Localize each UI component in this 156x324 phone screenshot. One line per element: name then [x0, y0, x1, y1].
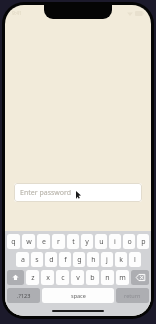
- staticText: y: [85, 237, 89, 247]
- button[interactable]: y: [81, 234, 93, 249]
- staticText: return: [124, 292, 141, 299]
- staticText: j: [106, 255, 108, 265]
- staticText: a: [21, 255, 25, 265]
- button[interactable]: g: [73, 252, 85, 267]
- staticText: i: [114, 237, 116, 247]
- staticText: l: [134, 255, 136, 265]
- button[interactable]: k: [115, 252, 127, 267]
- button[interactable]: v: [71, 270, 84, 285]
- button[interactable]: l: [129, 252, 141, 267]
- button[interactable]: s: [31, 252, 43, 267]
- staticText: v: [76, 273, 80, 283]
- button[interactable]: return: [116, 288, 149, 303]
- staticText: u: [99, 237, 104, 247]
- button[interactable]: n: [101, 270, 114, 285]
- button[interactable]: b: [86, 270, 99, 285]
- staticText: q: [11, 237, 16, 247]
- button[interactable]: t: [67, 234, 79, 249]
- button[interactable]: f: [59, 252, 71, 267]
- button[interactable]: m: [116, 270, 129, 285]
- button[interactable]: r: [52, 234, 65, 249]
- staticText: s: [35, 255, 39, 265]
- button[interactable]: z: [26, 270, 39, 285]
- button[interactable]: p: [137, 234, 149, 249]
- staticText: d: [49, 255, 54, 265]
- button[interactable]: j: [101, 252, 113, 267]
- staticText: b: [90, 273, 95, 283]
- staticText: 9:41: [12, 10, 22, 17]
- button[interactable]: .?123: [7, 288, 40, 303]
- button[interactable]: q: [7, 234, 20, 249]
- button[interactable]: Shift: [7, 270, 24, 285]
- staticText: k: [119, 255, 123, 265]
- button[interactable]: i: [109, 234, 121, 249]
- staticText: h: [91, 255, 96, 265]
- staticText: w: [26, 237, 32, 247]
- button[interactable]: Enter password: [14, 183, 142, 202]
- button[interactable]: x: [41, 270, 54, 285]
- button[interactable]: h: [87, 252, 99, 267]
- staticText: c: [61, 273, 65, 283]
- staticText: .?123: [17, 292, 31, 299]
- button[interactable]: o: [123, 234, 135, 249]
- staticText: o: [127, 237, 132, 247]
- button[interactable]: e: [37, 234, 50, 249]
- staticText: m: [119, 273, 126, 283]
- button[interactable]: a: [16, 252, 29, 267]
- button[interactable]: d: [45, 252, 57, 267]
- staticText: p: [141, 237, 146, 247]
- button[interactable]: c: [56, 270, 69, 285]
- staticText: n: [105, 273, 110, 283]
- staticText: z: [31, 273, 35, 283]
- staticText: f: [64, 255, 67, 265]
- staticText: e: [42, 237, 46, 247]
- staticText: t: [72, 237, 75, 247]
- button[interactable]: w: [22, 234, 35, 249]
- staticText: Enter password: [20, 188, 72, 198]
- staticText: space: [71, 292, 86, 299]
- staticText: r: [57, 237, 60, 247]
- button[interactable]: space: [42, 288, 114, 303]
- button[interactable]: u: [95, 234, 107, 249]
- staticText: g: [77, 255, 82, 265]
- staticText: x: [46, 273, 50, 283]
- button[interactable]: Backspace: [131, 270, 149, 285]
